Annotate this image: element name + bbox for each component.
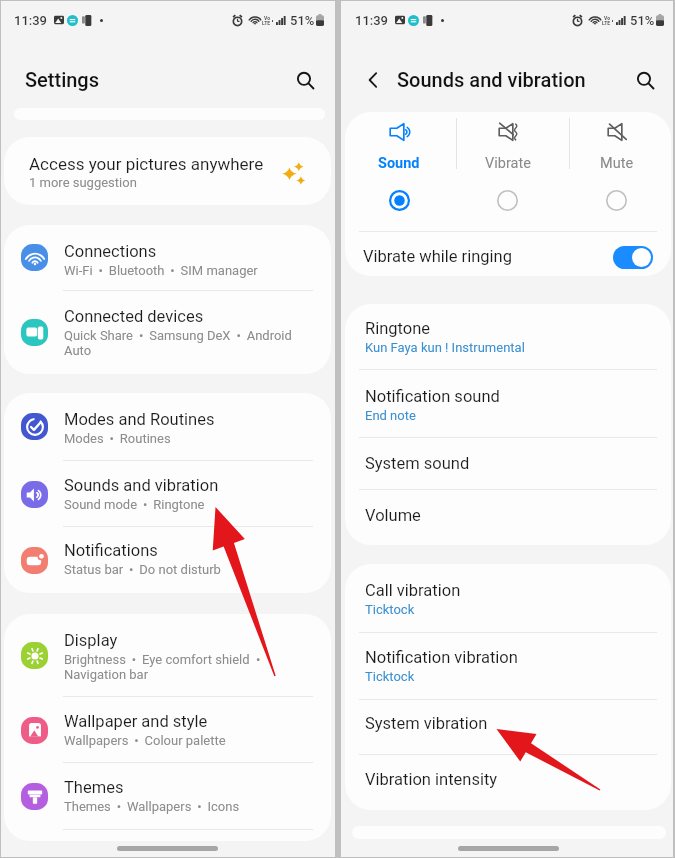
staticText: Ticktock (365, 669, 415, 684)
button[interactable]: Wallpaper and style (4, 697, 331, 763)
staticText: Brightness • Eye comfort shield • Naviga… (64, 652, 261, 682)
staticText: Connections (64, 240, 157, 261)
staticText: Themes • Wallpapers • Icons (64, 799, 240, 814)
button[interactable] (562, 178, 671, 222)
staticText: Notification vibration (365, 646, 518, 667)
button[interactable]: Call vibration (345, 564, 671, 632)
staticText: Sounds and vibration (397, 67, 586, 92)
staticText: System sound (365, 452, 470, 473)
button[interactable]: Access your pictures anywhere (4, 137, 331, 205)
button[interactable]: Vibrate (453, 112, 562, 186)
button[interactable] (453, 178, 562, 222)
button[interactable]: Connections (4, 225, 331, 290)
button[interactable]: Ringtone (345, 304, 671, 369)
button[interactable]: Mute (562, 112, 671, 186)
button[interactable]: Vibration intensity (345, 755, 671, 805)
staticText: Modes • Routines (64, 431, 171, 446)
staticText: Ringtone (365, 317, 431, 338)
staticText: Call vibration (365, 579, 461, 600)
button[interactable]: Notification sound (345, 370, 671, 437)
staticText: Vo (604, 15, 610, 21)
button[interactable]: System sound (345, 438, 671, 489)
staticText: Wallpaper and style (64, 710, 208, 731)
staticText: Access your pictures anywhere (29, 153, 264, 174)
button[interactable]: System vibration (345, 700, 671, 754)
staticText: 11:39 (14, 12, 48, 28)
staticText: LTE (262, 20, 271, 26)
button[interactable]: Search (625, 60, 665, 100)
staticText: System vibration (365, 712, 488, 733)
staticText: Kun Faya kun ! Instrumental (365, 340, 525, 355)
staticText: End note (365, 408, 416, 423)
button[interactable]: Modes and Routines (4, 393, 331, 460)
staticText: Wi-Fi • Bluetooth • SIM manager (64, 263, 258, 278)
staticText: 11:39 (355, 12, 389, 28)
staticText: Sound (378, 154, 420, 172)
staticText: Vibrate (485, 154, 531, 172)
staticText: Sounds and vibration (64, 474, 219, 495)
staticText: Ticktock (365, 602, 415, 617)
staticText: Mute (600, 154, 634, 172)
button[interactable]: Sounds and vibration (4, 461, 331, 527)
staticText: Status bar • Do not disturb (64, 562, 221, 577)
button[interactable]: Themes (4, 763, 331, 829)
staticText: Notification sound (365, 385, 500, 406)
staticText: Vibrate while ringing (363, 245, 512, 266)
staticText: Sound mode • Ringtone (64, 497, 205, 512)
staticText: LTE (602, 20, 611, 26)
button[interactable]: Vibrate while ringing (613, 246, 653, 269)
staticText: Vo (264, 15, 270, 21)
staticText: Connected devices (64, 305, 204, 326)
button[interactable]: Sound (345, 112, 453, 186)
staticText: Volume (365, 504, 421, 525)
staticText: Modes and Routines (64, 408, 215, 429)
staticText: Notifications (64, 539, 158, 560)
staticText: Settings (25, 67, 100, 92)
staticText: 51% (630, 12, 655, 28)
button[interactable] (345, 178, 453, 222)
button[interactable]: Search (285, 60, 325, 100)
button[interactable]: Connected devices (4, 291, 331, 374)
staticText: 51% (290, 12, 315, 28)
staticText: Display (64, 629, 118, 650)
button[interactable]: Vibrate while ringing (345, 232, 671, 276)
button[interactable]: Display (4, 614, 331, 696)
staticText: Vibration intensity (365, 768, 498, 789)
button[interactable]: Notifications (4, 527, 331, 593)
staticText: Quick Share • Samsung DeX • Android Auto (64, 328, 292, 358)
staticText: 1 more suggestion (29, 174, 137, 191)
staticText: Wallpapers • Colour palette (64, 733, 226, 748)
button[interactable]: Notification vibration (345, 633, 671, 699)
button[interactable]: Back (355, 62, 391, 98)
button[interactable]: Volume (345, 490, 671, 545)
staticText: Themes (64, 776, 124, 797)
